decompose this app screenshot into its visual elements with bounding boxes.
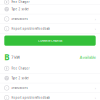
button[interactable]: Report a problem/feedback — [0, 24, 100, 34]
staticText: Instructions — [11, 17, 27, 21]
button[interactable]: Type 2 socket — [0, 73, 100, 83]
staticText: Report a problem/feedback — [11, 96, 49, 99]
staticText: Free Charger — [11, 0, 29, 4]
staticText: Instructions — [11, 86, 27, 90]
staticText: Report a problem/feedback — [11, 27, 49, 30]
staticText: Type 2 socket — [11, 7, 29, 11]
staticText: B — [4, 52, 9, 62]
button[interactable]: Instructions — [0, 14, 100, 24]
staticText: › — [95, 26, 96, 31]
button[interactable]: Type 2 socket — [0, 4, 100, 14]
button[interactable]: Free Charger — [0, 0, 100, 4]
staticText: › — [95, 95, 96, 100]
staticText: › — [95, 85, 96, 91]
button[interactable]: Instructions — [0, 83, 100, 93]
button[interactable]: Free Charger — [0, 64, 100, 74]
button[interactable]: CONFIRM CHARGE — [4, 35, 96, 46]
staticText: 7 kW — [11, 54, 20, 60]
staticText: Available — [80, 54, 96, 60]
staticText: Type 2 socket — [11, 76, 29, 80]
staticText: CONFIRM CHARGE — [38, 39, 62, 42]
button[interactable]: Report a problem/feedback — [0, 93, 100, 100]
staticText: › — [95, 16, 96, 22]
staticText: Free Charger — [11, 67, 29, 70]
